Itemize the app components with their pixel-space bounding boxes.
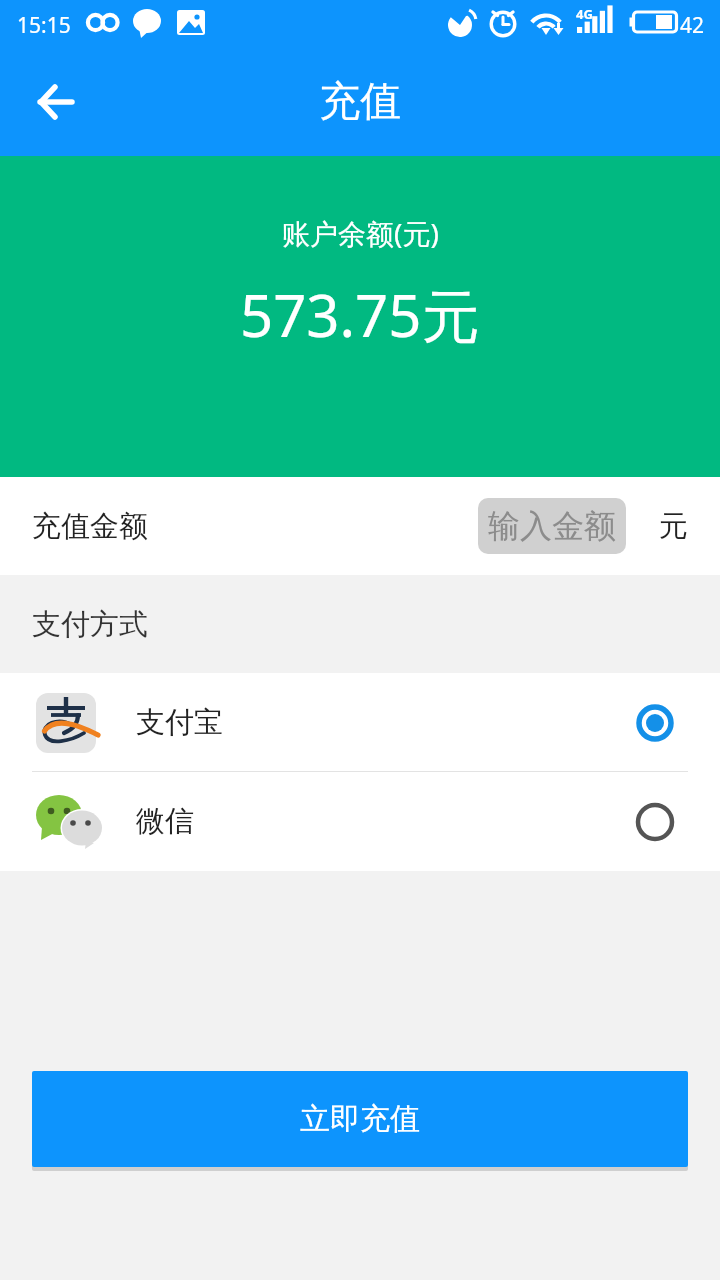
button[interactable]: 微信 [0,772,720,871]
staticText: 微信 [136,803,194,840]
staticText: 账户余额(元) [282,214,439,252]
staticText: 573.75元 [240,275,480,354]
staticText: 充值 [319,76,401,128]
button[interactable]: 立即充值 [32,1071,688,1167]
staticText: 42 [680,11,705,40]
staticText: 立即充值 [300,1100,420,1138]
staticText: 充值金额 [32,508,148,545]
staticText: 支付宝 [136,704,223,741]
button[interactable]: Back [0,48,100,156]
staticText: 支付方式 [32,606,148,643]
staticText: 4G [576,5,593,23]
staticText: 15:15 [17,11,71,40]
button[interactable]: Select Alipay [631,699,679,747]
button[interactable]: 输入金额 [478,498,626,554]
button[interactable]: Select WeChat [631,798,679,846]
staticText: 元 [659,508,688,545]
button[interactable]: 支付宝 [0,673,720,772]
staticText: 输入金额 [488,506,616,546]
